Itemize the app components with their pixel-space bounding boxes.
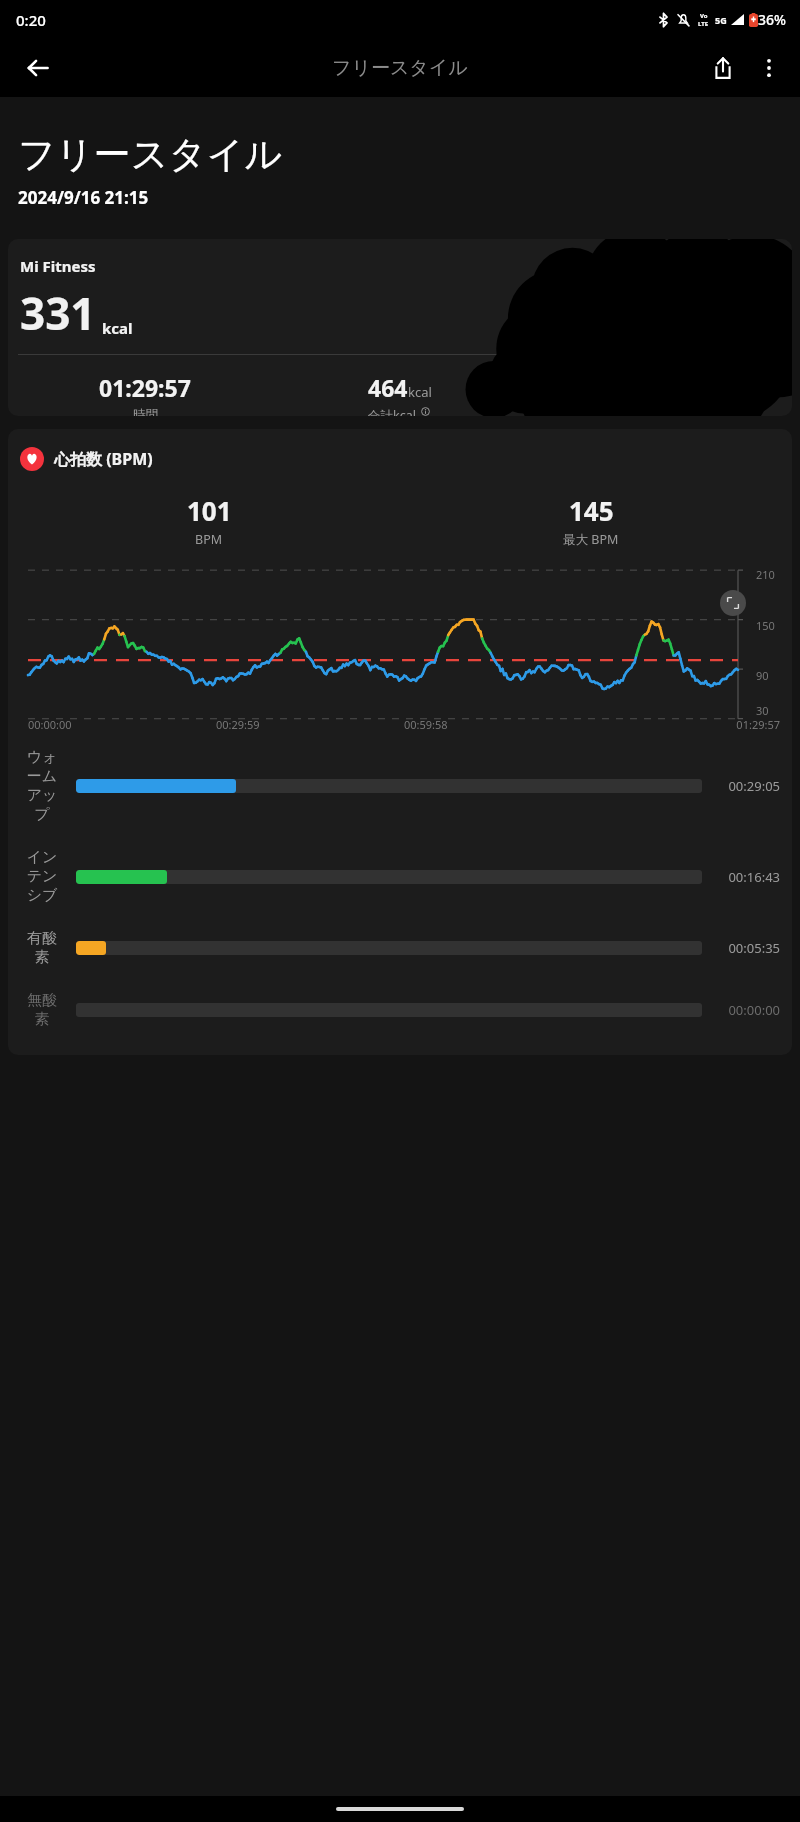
staticText: 00:00:00: [28, 717, 216, 732]
staticText: 00:29:59: [216, 717, 404, 732]
button[interactable]: Mi Fitness: [8, 239, 792, 416]
staticText: 最大 BPM: [563, 531, 619, 548]
button[interactable]: More options: [746, 45, 792, 91]
staticText: 331: [20, 283, 96, 343]
staticText: 2024/9/16 21:15: [18, 186, 149, 209]
button[interactable]: Back: [14, 44, 62, 92]
staticText: 101: [187, 493, 232, 528]
staticText: 00:16:43: [712, 868, 780, 886]
staticText: 時間: [133, 407, 158, 416]
staticText: BPM: [195, 531, 223, 548]
staticText: LTE: [698, 20, 709, 28]
staticText: Vo: [700, 12, 708, 20]
staticText: Mi Fitness: [20, 256, 96, 276]
button[interactable]: Expand chart: [720, 590, 746, 616]
staticText: 36%: [758, 10, 786, 29]
staticText: 464: [368, 372, 408, 403]
staticText: 01:29:57: [592, 717, 780, 732]
button[interactable]: イン テン シブ: [20, 848, 780, 905]
staticText: 00:29:05: [712, 777, 780, 795]
staticText: 145: [569, 493, 614, 528]
staticText: 合計kcal: [368, 407, 416, 416]
staticText: 有酸 素: [20, 929, 64, 967]
staticText: kcal: [102, 318, 133, 338]
staticText: 30: [756, 703, 769, 718]
staticText: kcal: [408, 383, 432, 401]
staticText: 00:05:35: [712, 939, 780, 957]
staticText: イン テン シブ: [20, 848, 64, 905]
staticText: ウォーム アップ: [20, 748, 64, 824]
staticText: フリースタイル: [18, 131, 283, 178]
button[interactable]: 有酸 素: [20, 929, 780, 967]
staticText: 無酸 素: [20, 991, 64, 1029]
button[interactable]: Share: [700, 45, 746, 91]
staticText: 00:59:58: [404, 717, 592, 732]
staticText: 90: [756, 668, 769, 683]
staticText: フリースタイル: [332, 56, 468, 80]
button[interactable]: ウォーム アップ: [20, 748, 780, 824]
button[interactable]: 無酸 素: [20, 991, 780, 1029]
staticText: 5G: [715, 14, 727, 26]
staticText: 心拍数 (BPM): [54, 448, 153, 470]
staticText: 210: [756, 567, 775, 582]
staticText: 150: [756, 618, 775, 633]
button[interactable]: 心拍数 (BPM): [20, 447, 153, 471]
staticText: 01:29:57: [99, 372, 191, 403]
staticText: 00:00:00: [712, 1001, 780, 1019]
staticText: 0:20: [16, 10, 46, 30]
